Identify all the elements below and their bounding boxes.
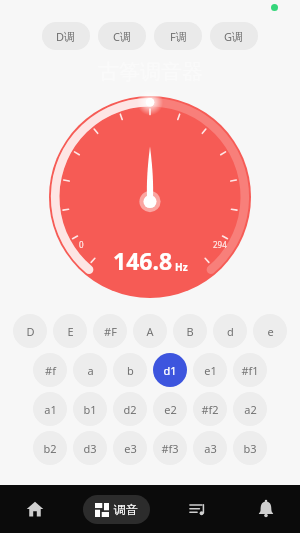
button[interactable]: d1 — [153, 353, 187, 387]
staticText: d — [227, 324, 234, 339]
staticText: #f — [45, 363, 56, 378]
button[interactable]: E — [53, 314, 87, 348]
staticText: e2 — [164, 402, 177, 417]
staticText: d3 — [83, 441, 97, 456]
staticText: F调 — [170, 29, 187, 44]
button[interactable]: C调 — [98, 22, 146, 50]
button[interactable]: #f2 — [193, 392, 227, 426]
staticText: a1 — [44, 402, 57, 417]
button[interactable]: d2 — [113, 392, 147, 426]
staticText: d1 — [163, 363, 177, 378]
staticText: D — [26, 324, 35, 339]
staticText: a3 — [204, 441, 217, 456]
staticText: D调 — [56, 29, 76, 44]
button[interactable]: B — [173, 314, 207, 348]
staticText: C调 — [113, 29, 131, 44]
button[interactable]: a3 — [193, 431, 227, 465]
staticText: Hz — [175, 260, 188, 274]
button[interactable]: a2 — [233, 392, 267, 426]
staticText: e1 — [204, 363, 217, 378]
button[interactable]: b — [113, 353, 147, 387]
button[interactable]: e1 — [193, 353, 227, 387]
button[interactable]: b3 — [233, 431, 267, 465]
button[interactable]: D — [13, 314, 47, 348]
button[interactable]: d — [213, 314, 247, 348]
button[interactable]: G调 — [210, 22, 258, 50]
staticText: a — [87, 363, 94, 378]
button[interactable]: b2 — [33, 431, 67, 465]
staticText: e3 — [124, 441, 137, 456]
button[interactable]: d3 — [73, 431, 107, 465]
button[interactable]: #F — [93, 314, 127, 348]
button[interactable]: #f1 — [233, 353, 267, 387]
staticText: 调音 — [114, 502, 138, 517]
staticText: #F — [104, 324, 117, 339]
button[interactable]: a — [73, 353, 107, 387]
staticText: b1 — [83, 402, 97, 417]
staticText: #f1 — [241, 363, 259, 378]
button[interactable]: e2 — [153, 392, 187, 426]
staticText: b3 — [243, 441, 257, 456]
button[interactable]: A — [133, 314, 167, 348]
button[interactable]: F调 — [154, 22, 202, 50]
button[interactable]: Notifications — [232, 485, 300, 533]
staticText: b2 — [43, 441, 57, 456]
button[interactable]: a1 — [33, 392, 67, 426]
button[interactable]: #f3 — [153, 431, 187, 465]
staticText: B — [186, 324, 194, 339]
button[interactable]: Song list — [164, 485, 232, 533]
button[interactable]: b1 — [73, 392, 107, 426]
button[interactable]: e3 — [113, 431, 147, 465]
staticText: e — [267, 324, 274, 339]
staticText: b — [127, 363, 134, 378]
staticText: A — [146, 324, 154, 339]
staticText: G调 — [224, 29, 244, 44]
staticText: 0 — [79, 239, 84, 250]
staticText: 146.8 — [113, 245, 173, 276]
button[interactable]: Home — [0, 485, 69, 533]
staticText: a2 — [244, 402, 257, 417]
staticText: d2 — [123, 402, 137, 417]
staticText: #f3 — [161, 441, 179, 456]
button[interactable]: e — [253, 314, 287, 348]
button[interactable]: #f — [33, 353, 67, 387]
staticText: #f2 — [201, 402, 219, 417]
staticText: E — [67, 324, 74, 339]
staticText: 294 — [213, 239, 227, 250]
button[interactable]: D调 — [42, 22, 90, 50]
button[interactable]: 调音 — [83, 495, 150, 524]
